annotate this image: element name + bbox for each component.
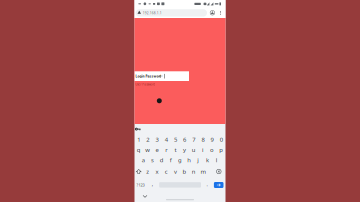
button[interactable]: 192.168.1.1 <box>0 0 360 202</box>
staticText: p <box>219 146 223 154</box>
button[interactable]: 0 <box>0 0 360 202</box>
button[interactable]: 3 <box>0 0 360 202</box>
staticText: q <box>137 146 141 154</box>
staticText: Login Password <box>135 74 161 78</box>
staticText: l <box>216 156 218 164</box>
button[interactable]: Space <box>0 0 360 202</box>
button[interactable]: 1 <box>0 0 360 202</box>
staticText: 4 <box>165 135 168 143</box>
button[interactable]: l <box>0 0 360 202</box>
button[interactable]: i <box>0 0 360 202</box>
staticText: y <box>183 146 186 154</box>
staticText: k <box>206 156 209 164</box>
staticText: 1 <box>137 135 140 143</box>
button[interactable]: j <box>0 0 360 202</box>
button[interactable]: o <box>0 0 360 202</box>
button[interactable]: 8 <box>0 0 360 202</box>
button[interactable]: 2 <box>0 0 360 202</box>
button[interactable]: g <box>0 0 360 202</box>
button[interactable]: Backspace <box>0 0 360 202</box>
button[interactable]: a <box>0 0 360 202</box>
button[interactable]: Hide keyboard <box>0 0 360 202</box>
staticText: m <box>200 167 205 175</box>
staticText: j <box>197 156 199 164</box>
button[interactable]: b <box>0 0 360 202</box>
button[interactable]: y <box>0 0 360 202</box>
button[interactable]: x <box>0 0 360 202</box>
staticText: g <box>178 156 182 164</box>
button[interactable]: Shift <box>0 0 360 202</box>
button[interactable]: d <box>0 0 360 202</box>
staticText: x <box>155 167 158 175</box>
button[interactable]: c <box>0 0 360 202</box>
staticText: 0 <box>220 135 223 143</box>
staticText: d <box>160 156 164 164</box>
button[interactable]: ?123 <box>0 0 360 202</box>
staticText: v <box>174 167 177 175</box>
button[interactable]: 4 <box>0 0 360 202</box>
button[interactable]: n <box>0 0 360 202</box>
staticText: b <box>182 167 186 175</box>
staticText: 2 <box>146 135 149 143</box>
button[interactable]: h <box>0 0 360 202</box>
staticText: 192.168.1.1 <box>143 11 162 15</box>
button[interactable]: p <box>0 0 360 202</box>
staticText: s <box>151 156 154 164</box>
button[interactable]: u <box>0 0 360 202</box>
button[interactable]: f <box>0 0 360 202</box>
button[interactable]: w <box>0 0 360 202</box>
button[interactable]: Account <box>0 0 360 202</box>
staticText: f <box>170 156 172 164</box>
button[interactable]: s <box>0 0 360 202</box>
button[interactable]: Password manager <box>0 0 360 202</box>
staticText: 3 <box>155 135 158 143</box>
button[interactable]: Enter <box>0 0 360 202</box>
button[interactable]: , <box>0 0 360 202</box>
staticText: 6 <box>183 135 186 143</box>
staticText: u <box>192 146 196 154</box>
button[interactable]: z <box>0 0 360 202</box>
staticText: r <box>165 146 167 154</box>
button[interactable]: . <box>0 0 360 202</box>
button[interactable]: 9 <box>0 0 360 202</box>
button[interactable]: e <box>0 0 360 202</box>
staticText: . <box>206 181 207 188</box>
staticText: 8 <box>201 135 204 143</box>
staticText: w <box>145 146 150 154</box>
staticText: 5 <box>174 135 177 143</box>
staticText: o <box>210 146 214 154</box>
staticText: 9 <box>211 135 214 143</box>
button[interactable]: m <box>0 0 360 202</box>
button[interactable]: r <box>0 0 360 202</box>
button[interactable]: q <box>0 0 360 202</box>
staticText: t <box>174 146 176 154</box>
button[interactable]: k <box>0 0 360 202</box>
button[interactable]: t <box>0 0 360 202</box>
button[interactable]: v <box>0 0 360 202</box>
staticText: c <box>165 167 168 175</box>
staticText: e <box>155 146 158 154</box>
staticText: a <box>142 156 145 164</box>
staticText: z <box>146 167 149 175</box>
button[interactable]: 6 <box>0 0 360 202</box>
staticText: User Password <box>135 82 155 86</box>
staticText: ••• <box>160 75 163 78</box>
button[interactable]: 7 <box>0 0 360 202</box>
staticText: ?123 <box>137 182 145 188</box>
button[interactable]: More options <box>0 0 360 202</box>
staticText: i <box>202 146 204 154</box>
button[interactable]: 5 <box>0 0 360 202</box>
staticText: 7 <box>192 135 195 143</box>
staticText: h <box>187 156 191 164</box>
staticText: n <box>192 167 196 175</box>
staticText: , <box>152 181 153 188</box>
